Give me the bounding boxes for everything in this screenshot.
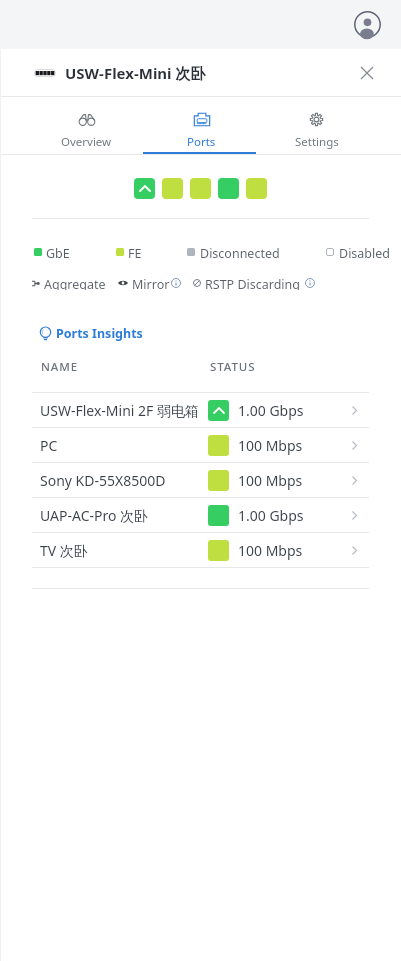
staticText: Disabled — [339, 245, 391, 259]
staticText: TV 次卧 — [40, 541, 88, 560]
staticText: Overview — [61, 134, 112, 150]
button[interactable]: Overview — [29, 97, 144, 155]
staticText: 1.00 Gbps — [238, 401, 304, 420]
staticText: GbE — [46, 245, 70, 259]
button[interactable]: Ports — [144, 97, 259, 155]
button[interactable]: PC — [0, 428, 401, 462]
staticText: NAME — [41, 359, 79, 373]
staticText: 100 Mbps — [238, 541, 303, 560]
button[interactable] — [134, 178, 155, 199]
staticText: 100 Mbps — [238, 471, 303, 490]
staticText: STATUS — [210, 359, 256, 373]
staticText: Disconnected — [200, 245, 280, 259]
button[interactable]: Settings — [259, 97, 374, 155]
staticText: Mirror — [132, 276, 170, 290]
button[interactable] — [162, 178, 183, 199]
button[interactable] — [218, 178, 239, 199]
staticText: UAP-AC-Pro 次卧 — [40, 506, 149, 525]
staticText: Sony KD-55X8500D — [40, 471, 166, 490]
staticText: 1.00 Gbps — [238, 506, 304, 525]
button[interactable]: USW-Flex-Mini 2F 弱电箱 — [0, 393, 401, 427]
staticText: USW-Flex-Mini 次卧 — [65, 63, 206, 83]
button[interactable]: Sony KD-55X8500D — [0, 463, 401, 497]
button[interactable]: TV 次卧 — [0, 533, 401, 567]
staticText: USW-Flex-Mini 2F 弱电箱 — [40, 401, 199, 420]
staticText: Ports — [187, 134, 216, 150]
staticText: RSTP Discarding — [205, 276, 300, 290]
button[interactable]: Ports Insights — [39, 324, 143, 342]
staticText: Aggregate — [44, 276, 106, 290]
staticText: Ports Insights — [56, 325, 143, 342]
staticText: 100 Mbps — [238, 436, 303, 455]
button[interactable] — [190, 178, 211, 199]
button[interactable]: Account — [354, 11, 381, 38]
staticText: Settings — [295, 134, 339, 150]
button[interactable] — [246, 178, 267, 199]
button[interactable]: Close — [354, 60, 380, 86]
button[interactable]: UAP-AC-Pro 次卧 — [0, 498, 401, 532]
staticText: FE — [128, 245, 142, 259]
staticText: PC — [40, 436, 58, 455]
